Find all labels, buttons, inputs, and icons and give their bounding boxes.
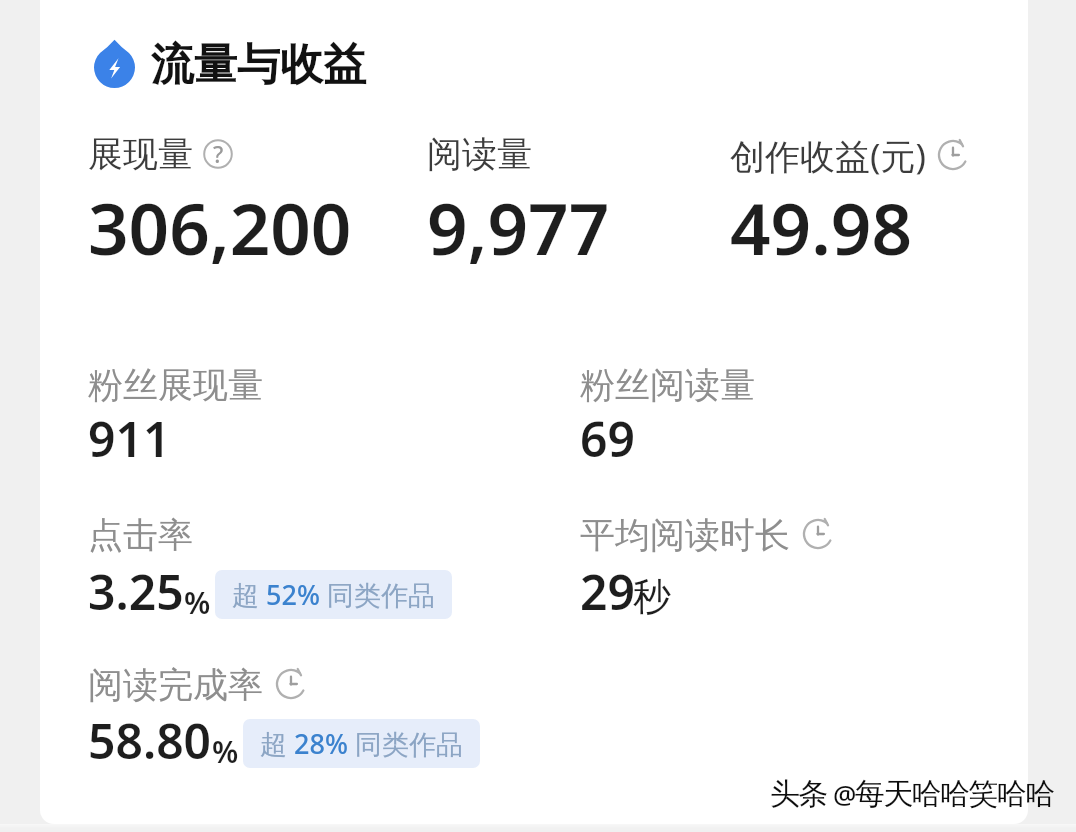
staticText: 阅读完成率	[88, 663, 263, 707]
staticText: 306,200	[88, 179, 352, 276]
staticText: 58.80	[88, 708, 212, 773]
staticText: 点击率	[88, 513, 193, 557]
staticText: 粉丝阅读量	[580, 363, 755, 407]
staticText: 粉丝展现量	[88, 363, 263, 407]
staticText: 3.25	[88, 559, 184, 624]
staticText: 9,977	[427, 179, 610, 276]
button[interactable]: 点击率	[88, 510, 508, 615]
staticText: 展现量	[88, 132, 193, 176]
button[interactable]: 更新时间	[275, 668, 307, 700]
button[interactable]: 粉丝展现量	[88, 360, 508, 460]
staticText: 911	[88, 406, 171, 471]
staticText: 超 28% 同类作品	[260, 725, 463, 762]
button[interactable]: 阅读量	[427, 125, 717, 270]
staticText: 头条 @每天哈哈笑哈哈	[770, 772, 1054, 813]
button[interactable]: 更新时间	[802, 518, 834, 550]
button[interactable]: 创作收益(元)	[730, 125, 1028, 270]
staticText: 流量与收益	[151, 38, 366, 92]
staticText: ?	[213, 138, 224, 168]
staticText: %	[212, 731, 239, 772]
button[interactable]: 流量与收益	[94, 38, 366, 92]
staticText: 秒	[633, 573, 671, 621]
staticText: 29	[580, 559, 635, 624]
staticText: %	[184, 582, 211, 623]
button[interactable]: 说明	[203, 139, 233, 169]
button[interactable]: 更新时间	[937, 139, 969, 171]
button[interactable]: 展现量	[88, 125, 408, 270]
staticText: 69	[580, 406, 635, 471]
staticText: 49.98	[730, 179, 913, 276]
staticText: 创作收益(元)	[730, 132, 927, 180]
button[interactable]: 超 28% 同类作品	[243, 719, 480, 768]
staticText: 平均阅读时长	[580, 513, 790, 557]
staticText: 阅读量	[427, 132, 532, 176]
button[interactable]: 流量与收益	[94, 38, 135, 88]
button[interactable]: 粉丝阅读量	[580, 360, 1000, 460]
staticText: 超 52% 同类作品	[232, 576, 435, 613]
button[interactable]: 超 52% 同类作品	[215, 570, 452, 619]
button[interactable]: 阅读完成率	[88, 660, 548, 770]
button[interactable]: 平均阅读时长	[580, 510, 960, 615]
